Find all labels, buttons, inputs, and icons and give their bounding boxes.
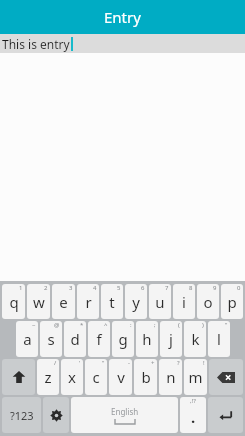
staticText: ( <box>178 321 180 329</box>
staticText: x <box>68 367 76 387</box>
staticText: f <box>96 329 102 349</box>
staticText: 3 <box>69 284 73 292</box>
button[interactable]: s <box>40 321 62 357</box>
staticText: ! <box>203 359 205 367</box>
staticText: 8 <box>189 284 193 292</box>
staticText: c <box>92 367 100 387</box>
button[interactable]: q <box>2 284 25 319</box>
button[interactable]: d <box>64 321 86 357</box>
staticText: n <box>166 367 176 387</box>
staticText: d <box>70 329 80 349</box>
button[interactable]: g <box>112 321 134 357</box>
button[interactable]: Settings <box>43 397 69 433</box>
button[interactable]: Backspace <box>209 359 243 395</box>
button[interactable]: z <box>37 359 59 395</box>
staticText: " <box>225 321 228 329</box>
staticText: + <box>151 359 155 367</box>
staticText: ^ <box>104 321 108 329</box>
button[interactable]: n <box>159 359 182 395</box>
staticText: 6 <box>141 284 145 292</box>
staticText: 0 <box>237 284 241 292</box>
staticText: 5 <box>117 284 121 292</box>
button[interactable]: e <box>52 284 75 319</box>
button[interactable]: i <box>173 284 195 319</box>
button[interactable]: u <box>149 284 171 319</box>
button[interactable]: Period <box>180 397 206 433</box>
staticText: k <box>191 329 200 349</box>
staticText: " <box>102 359 105 367</box>
staticText: English <box>111 406 139 417</box>
button[interactable]: f <box>88 321 110 357</box>
staticText: t <box>109 292 115 312</box>
staticText: - <box>128 359 130 367</box>
button[interactable]: j <box>160 321 182 357</box>
button[interactable]: l <box>208 321 230 357</box>
staticText: / <box>54 359 57 367</box>
staticText: ) <box>202 321 204 329</box>
staticText: ~ <box>32 321 36 329</box>
staticText: ; <box>154 321 156 329</box>
button[interactable]: Enter <box>208 397 243 433</box>
staticText: i <box>182 292 186 312</box>
button[interactable]: b <box>134 359 157 395</box>
button[interactable]: a <box>16 321 38 357</box>
staticText: ' <box>79 359 81 367</box>
button[interactable]: p <box>221 284 243 319</box>
staticText: e <box>59 292 68 312</box>
button[interactable]: w <box>27 284 50 319</box>
button[interactable]: h <box>136 321 158 357</box>
button[interactable]: c <box>85 359 107 395</box>
staticText: . <box>191 407 196 427</box>
staticText: : <box>130 321 132 329</box>
staticText: w <box>33 292 45 312</box>
staticText: m <box>188 367 203 387</box>
staticText: h <box>142 329 152 349</box>
button[interactable]: ?123 <box>2 397 41 433</box>
staticText: Entry <box>104 7 141 27</box>
staticText: z <box>44 367 52 387</box>
staticText: 4 <box>93 284 97 292</box>
staticText: a <box>23 329 32 349</box>
staticText: ? <box>177 359 180 367</box>
staticText: 7 <box>165 284 169 292</box>
button[interactable]: o <box>197 284 219 319</box>
button[interactable]: m <box>184 359 207 395</box>
button[interactable]: t <box>101 284 123 319</box>
staticText: This is entry <box>2 36 70 52</box>
button[interactable]: v <box>109 359 132 395</box>
button[interactable]: y <box>125 284 147 319</box>
staticText: @ <box>54 321 60 329</box>
staticText: q <box>9 292 19 312</box>
staticText: l <box>217 329 221 349</box>
staticText: b <box>141 367 151 387</box>
button[interactable]: This is entry <box>0 34 245 53</box>
staticText: ?123 <box>10 408 34 423</box>
staticText: j <box>169 329 173 349</box>
staticText: u <box>155 292 165 312</box>
staticText: y <box>132 292 140 312</box>
staticText: p <box>227 292 237 312</box>
button[interactable]: Shift <box>2 359 35 395</box>
staticText: * <box>80 321 84 329</box>
staticText: r <box>85 292 92 312</box>
button[interactable]: x <box>61 359 83 395</box>
staticText: 1 <box>19 284 23 292</box>
button[interactable]: Space <box>71 397 178 433</box>
staticText: 2 <box>44 284 48 292</box>
staticText: 9 <box>213 284 217 292</box>
staticText: o <box>203 292 213 312</box>
staticText: ,!? <box>190 397 196 405</box>
staticText: s <box>47 329 55 349</box>
staticText: v <box>117 367 125 387</box>
button[interactable]: r <box>77 284 99 319</box>
button[interactable]: k <box>184 321 206 357</box>
staticText: g <box>118 329 128 349</box>
